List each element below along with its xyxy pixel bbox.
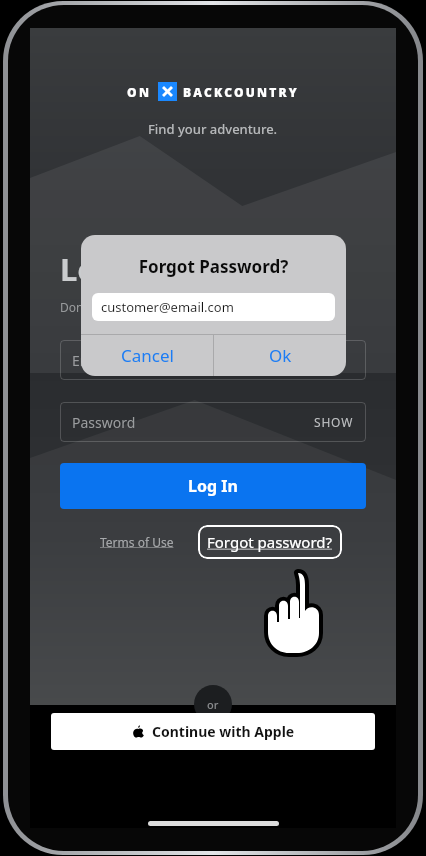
staticText: Password bbox=[72, 413, 136, 432]
staticText: or bbox=[207, 697, 219, 712]
staticText: Forgot password? bbox=[207, 532, 333, 552]
button[interactable]: Ok bbox=[214, 335, 346, 376]
staticText: BACKCOUNTRY bbox=[183, 84, 299, 100]
button[interactable]: Continue with Apple bbox=[51, 713, 375, 750]
button[interactable]: Forgot password? bbox=[207, 532, 333, 552]
staticText: Ok bbox=[269, 344, 292, 367]
button[interactable]: Password bbox=[72, 402, 354, 442]
button[interactable]: Cancel bbox=[81, 335, 213, 376]
staticText: Cancel bbox=[121, 344, 174, 367]
staticText: Terms of Use bbox=[100, 534, 174, 550]
staticText: Email bbox=[72, 351, 108, 370]
button[interactable]: Email bbox=[72, 340, 354, 380]
staticText: Log In bbox=[60, 248, 157, 290]
button[interactable]: customer@email.com bbox=[101, 293, 326, 321]
staticText: customer@email.com bbox=[101, 298, 234, 316]
staticText: ON bbox=[127, 84, 152, 100]
staticText: SHOW bbox=[314, 414, 354, 430]
staticText: Forgot Password? bbox=[81, 255, 346, 278]
button[interactable]: Terms of Use bbox=[100, 534, 174, 550]
button[interactable]: Log In bbox=[60, 463, 366, 509]
staticText: Find your adventure. bbox=[148, 120, 278, 138]
staticText: Don't have an account? bbox=[60, 299, 191, 315]
staticText: Continue with Apple bbox=[152, 722, 295, 741]
staticText: Log In bbox=[188, 475, 238, 497]
